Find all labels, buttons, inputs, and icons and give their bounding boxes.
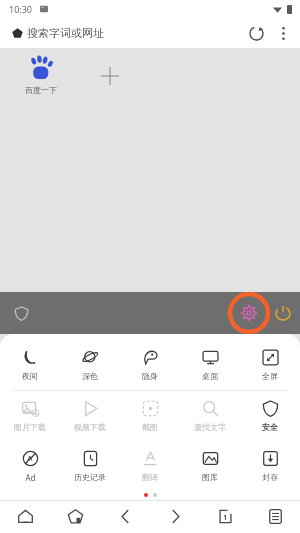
button[interactable]: Ad bbox=[0, 441, 60, 491]
button[interactable]: Add shortcut bbox=[90, 56, 130, 96]
button[interactable]: 查找文字 bbox=[180, 391, 240, 441]
button[interactable]: 隐身 bbox=[120, 340, 180, 390]
button[interactable]: 翻译 bbox=[120, 441, 180, 491]
button[interactable]: More options bbox=[272, 22, 294, 44]
staticText: 夜间 bbox=[22, 371, 38, 381]
button[interactable]: Settings bbox=[228, 292, 270, 334]
button[interactable]: 百度一下 bbox=[14, 56, 68, 95]
button[interactable]: Forward bbox=[150, 500, 200, 533]
staticText: 视频下载 bbox=[74, 422, 106, 432]
button[interactable]: 视频下载 bbox=[60, 391, 120, 441]
staticText: 翻译 bbox=[142, 472, 158, 482]
staticText: Ad bbox=[25, 472, 36, 483]
button[interactable]: Home bbox=[0, 500, 50, 533]
staticText: 桌面 bbox=[202, 371, 218, 381]
staticText: 隐身 bbox=[142, 371, 158, 381]
staticText: 历史记录 bbox=[74, 472, 106, 482]
button[interactable]: 历史记录 bbox=[60, 441, 120, 491]
button[interactable]: 图片下载 bbox=[0, 391, 60, 441]
staticText: 10:30 bbox=[9, 3, 33, 15]
button[interactable]: Bookmarks bbox=[50, 500, 100, 533]
button[interactable]: Site badge bbox=[6, 22, 28, 44]
staticText: 查找文字 bbox=[194, 422, 226, 432]
staticText: 百度一下 bbox=[25, 85, 57, 95]
staticText: 截图 bbox=[142, 422, 158, 432]
button[interactable]: Back bbox=[100, 500, 150, 533]
button[interactable]: 截图 bbox=[120, 391, 180, 441]
staticText: 搜索字词或网址 bbox=[27, 26, 104, 40]
button[interactable]: Privacy shield bbox=[8, 300, 34, 326]
button[interactable]: 图库 bbox=[180, 441, 240, 491]
staticText: 图库 bbox=[202, 472, 218, 482]
button[interactable]: 桌面 bbox=[180, 340, 240, 390]
staticText: 深色 bbox=[82, 371, 98, 381]
button[interactable]: 深色 bbox=[60, 340, 120, 390]
button[interactable]: 全屏 bbox=[240, 340, 300, 390]
button[interactable]: 安全 bbox=[240, 391, 300, 441]
button[interactable]: Menu bbox=[250, 500, 300, 533]
button[interactable]: Exit bbox=[271, 301, 295, 325]
staticText: 图片下载 bbox=[14, 422, 46, 432]
button[interactable]: Tabs bbox=[200, 500, 250, 533]
staticText: 全屏 bbox=[262, 371, 278, 381]
button[interactable]: 封存 bbox=[240, 441, 300, 491]
button[interactable]: 夜间 bbox=[0, 340, 60, 390]
staticText: 封存 bbox=[262, 472, 278, 482]
button[interactable]: Refresh bbox=[244, 21, 268, 45]
staticText: 安全 bbox=[262, 422, 278, 432]
